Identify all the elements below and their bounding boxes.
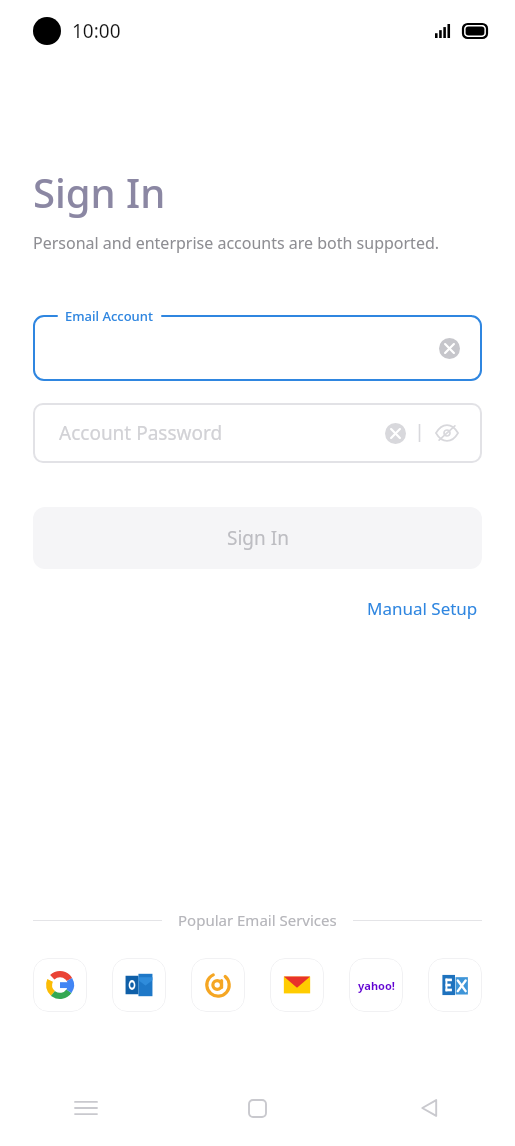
- button[interactable]: Yahoo Mail: [349, 958, 403, 1012]
- button[interactable]: Clear password: [381, 419, 409, 447]
- button[interactable]: Outlook: [112, 958, 166, 1012]
- button[interactable]: Back: [343, 1084, 515, 1132]
- button[interactable]: Clear email: [434, 333, 464, 363]
- button[interactable]: Recent apps: [0, 1084, 171, 1132]
- staticText: 10:00: [72, 18, 121, 44]
- staticText: Sign In: [227, 525, 289, 551]
- staticText: Personal and enterprise accounts are bot…: [33, 232, 440, 254]
- staticText: Account Password: [59, 420, 223, 446]
- button[interactable]: Manual Setup: [363, 593, 482, 624]
- staticText: Email Account: [65, 307, 153, 325]
- staticText: yahoo!: [358, 978, 395, 993]
- staticText: Sign In: [33, 165, 166, 219]
- button[interactable]: Home: [171, 1084, 343, 1132]
- button[interactable]: Email Account: [33, 315, 482, 381]
- button[interactable]: Show password: [432, 418, 462, 448]
- button[interactable]: Sign In: [33, 507, 482, 569]
- button[interactable]: Account Password: [33, 403, 482, 463]
- button[interactable]: Exchange: [428, 958, 482, 1012]
- staticText: Popular Email Services: [178, 910, 337, 930]
- button[interactable]: Gmail: [33, 958, 87, 1012]
- button[interactable]: Other email: [191, 958, 245, 1012]
- button[interactable]: Yandex Mail: [270, 958, 324, 1012]
- staticText: Manual Setup: [367, 597, 478, 620]
